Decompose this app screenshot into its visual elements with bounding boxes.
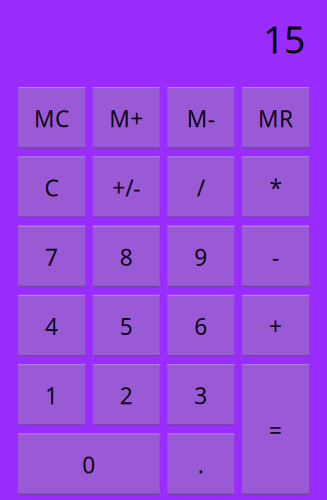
button[interactable]: . bbox=[167, 433, 234, 495]
staticText: 4 bbox=[45, 311, 58, 341]
button[interactable]: 5 bbox=[93, 295, 160, 356]
staticText: 0 bbox=[82, 450, 95, 480]
staticText: 5 bbox=[120, 311, 133, 341]
staticText: * bbox=[269, 172, 281, 203]
button[interactable]: 9 bbox=[167, 225, 234, 287]
staticText: 7 bbox=[45, 242, 58, 272]
button[interactable]: - bbox=[242, 225, 309, 287]
button[interactable]: * bbox=[242, 156, 309, 218]
staticText: 1 bbox=[45, 380, 58, 410]
staticText: 15 bbox=[263, 14, 305, 64]
staticText: MR bbox=[258, 103, 293, 133]
staticText: 2 bbox=[120, 380, 133, 410]
staticText: . bbox=[198, 450, 204, 480]
button[interactable]: 6 bbox=[167, 295, 234, 356]
button[interactable]: 8 bbox=[93, 225, 160, 287]
button[interactable]: MC bbox=[18, 87, 85, 149]
button[interactable]: 1 bbox=[18, 364, 85, 426]
button[interactable]: 3 bbox=[167, 364, 234, 426]
button[interactable]: / bbox=[167, 156, 234, 218]
staticText: + bbox=[269, 311, 282, 341]
staticText: 8 bbox=[120, 242, 133, 272]
staticText: M+ bbox=[109, 103, 143, 133]
button[interactable]: 4 bbox=[18, 295, 85, 356]
staticText: M- bbox=[187, 103, 215, 133]
staticText: = bbox=[269, 415, 282, 445]
button[interactable]: + bbox=[242, 295, 309, 356]
staticText: C bbox=[44, 172, 58, 203]
staticText: - bbox=[272, 242, 279, 272]
button[interactable]: 7 bbox=[18, 225, 85, 287]
staticText: 6 bbox=[194, 311, 207, 341]
button[interactable]: +/- bbox=[93, 156, 160, 218]
button[interactable]: 2 bbox=[93, 364, 160, 426]
button[interactable]: M+ bbox=[93, 87, 160, 149]
button[interactable]: MR bbox=[242, 87, 309, 149]
button[interactable]: = bbox=[242, 364, 309, 495]
button[interactable]: M- bbox=[167, 87, 234, 149]
staticText: / bbox=[197, 172, 205, 203]
staticText: +/- bbox=[112, 172, 140, 203]
staticText: 3 bbox=[194, 380, 207, 410]
button[interactable]: 0 bbox=[18, 433, 160, 495]
button[interactable]: C bbox=[18, 156, 85, 218]
staticText: MC bbox=[34, 103, 69, 133]
staticText: 9 bbox=[194, 242, 207, 272]
